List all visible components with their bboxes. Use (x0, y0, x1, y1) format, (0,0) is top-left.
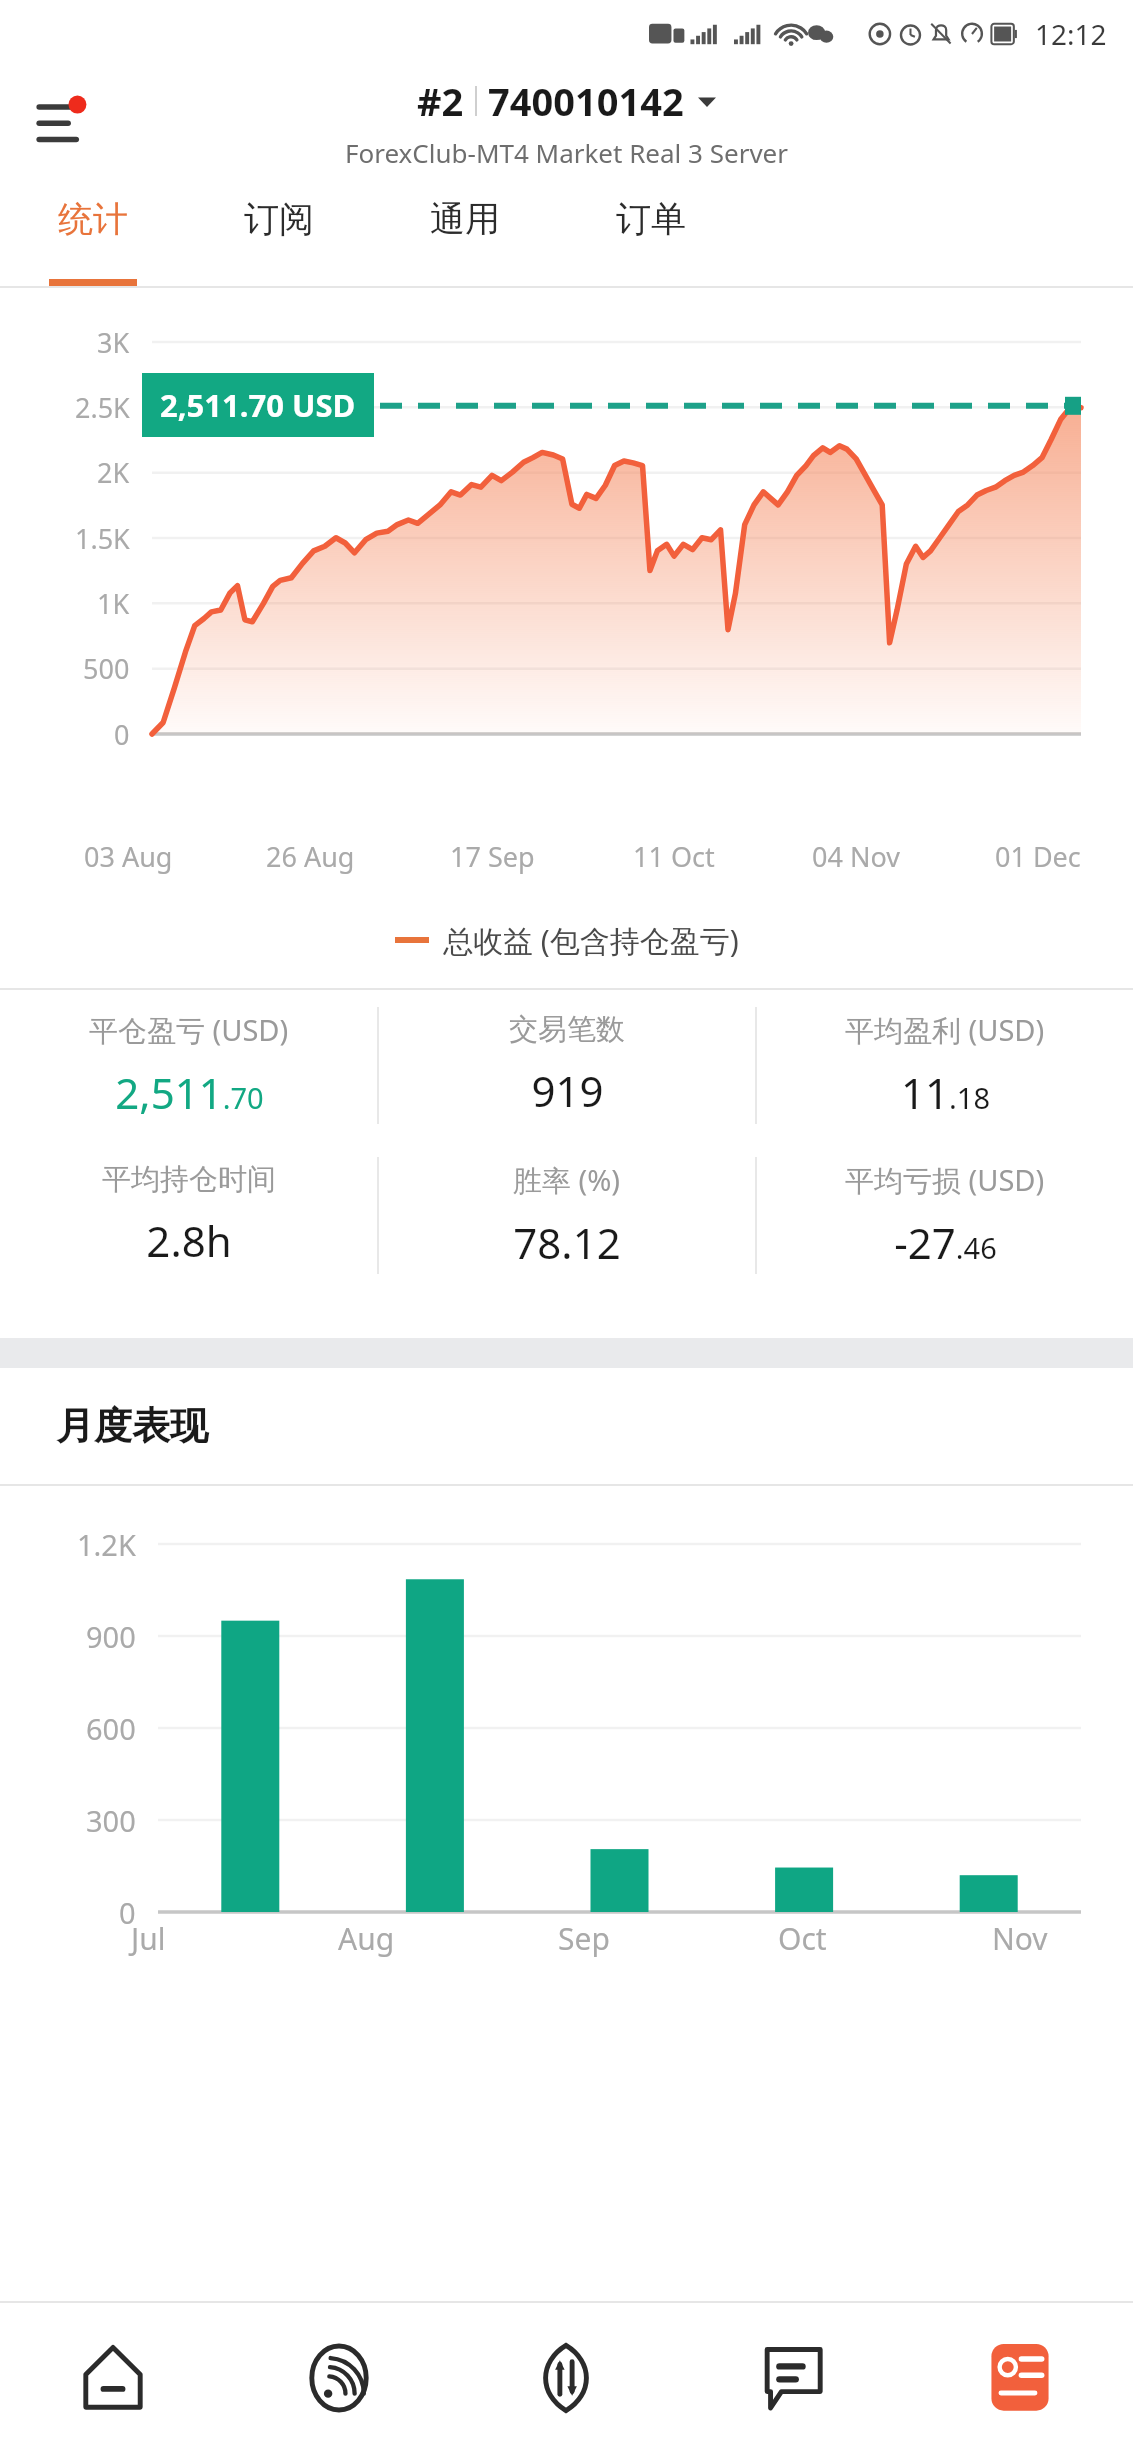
staticText: 3K (97, 324, 130, 361)
button[interactable]: 平均持仓时间 (0, 1140, 377, 1290)
staticText: #2 (417, 75, 464, 127)
staticText: 900 (86, 1617, 136, 1656)
staticText: 600 (86, 1709, 136, 1748)
staticText: 2K (97, 454, 130, 491)
staticText: Sep (558, 1918, 610, 1959)
staticText: ForexClub-MT4 Market Real 3 Server (345, 135, 788, 170)
staticText: 740010142 (488, 75, 684, 127)
staticText: 总收益 (包含持仓盈亏) (443, 920, 739, 961)
staticText: 2.5K (75, 389, 130, 426)
staticText: 订单 (616, 197, 686, 241)
staticText: 平仓盈亏 (USD) (89, 1010, 289, 1050)
button[interactable]: Messages (679, 2303, 906, 2453)
button[interactable]: 胜率 (%) (379, 1140, 755, 1290)
staticText: 26 Aug (266, 838, 355, 875)
button[interactable]: Account (906, 2303, 1133, 2453)
button[interactable]: Menu (22, 77, 112, 167)
staticText: 12:12 (1035, 15, 1107, 53)
staticText: 2.8h (146, 1212, 232, 1269)
staticText: 78.12 (513, 1214, 621, 1271)
button[interactable]: 交易笔数 (379, 990, 755, 1140)
staticText: 通用 (430, 197, 500, 241)
staticText: 500 (83, 650, 130, 687)
button[interactable]: Trade (452, 2303, 679, 2453)
staticText: 1.5K (75, 520, 130, 557)
button[interactable]: 统计 (0, 176, 186, 286)
staticText: 11 Oct (633, 838, 715, 875)
staticText: 胜率 (%) (513, 1160, 621, 1200)
staticText: 统计 (58, 197, 128, 241)
staticText: 0 (119, 1893, 136, 1932)
button[interactable]: Quotes (0, 2303, 226, 2453)
staticText: 01 Dec (995, 838, 1081, 875)
staticText: 平均持仓时间 (102, 1161, 276, 1198)
button[interactable]: 通用 (372, 176, 558, 286)
staticText: 03 Aug (84, 838, 173, 875)
staticText: 1.2K (77, 1525, 136, 1564)
staticText: 919 (531, 1062, 604, 1119)
staticText: Jul (131, 1918, 166, 1959)
staticText: Aug (338, 1918, 395, 1959)
staticText: 2,511.70 (115, 1064, 264, 1121)
button[interactable]: Charts (226, 2303, 452, 2453)
staticText: Oct (778, 1918, 827, 1959)
staticText: 11.18 (901, 1064, 990, 1121)
staticText: 交易笔数 (509, 1011, 625, 1048)
button[interactable]: 平仓盈亏 (USD) (0, 990, 377, 1140)
staticText: 17 Sep (450, 838, 535, 875)
staticText: 0 (114, 716, 130, 753)
button[interactable]: 平均亏损 (USD) (757, 1140, 1133, 1290)
staticText: -27.46 (894, 1214, 997, 1271)
button[interactable]: 订阅 (186, 176, 372, 286)
staticText: 1K (97, 585, 130, 622)
staticText: 04 Nov (812, 838, 900, 875)
button[interactable]: 平均盈利 (USD) (757, 990, 1133, 1140)
button[interactable]: 订单 (558, 176, 744, 286)
staticText: Nov (992, 1918, 1048, 1959)
staticText: 月度表现 (56, 1402, 208, 1450)
staticText: 订阅 (244, 197, 314, 241)
staticText: 平均盈利 (USD) (845, 1010, 1045, 1050)
staticText: 300 (86, 1801, 136, 1840)
staticText: 2,511.70 USD (160, 384, 356, 426)
staticText: 平均亏损 (USD) (845, 1160, 1045, 1200)
